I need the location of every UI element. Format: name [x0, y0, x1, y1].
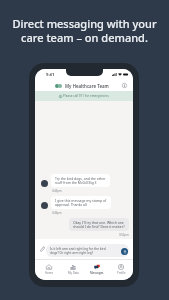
button[interactable]: Profile: [109, 260, 133, 280]
staticText: Please call 911 for emergencies: [63, 94, 109, 98]
staticText: Profile: [117, 271, 126, 275]
staticText: 3:46pm: [52, 211, 62, 215]
button[interactable]: My Data: [61, 260, 85, 280]
staticText: My Data: [68, 271, 79, 275]
button[interactable]: Attach file: [37, 244, 46, 253]
staticText: Is it left arm and right leg for the bir…: [50, 247, 106, 255]
staticText: 3:45pm: [52, 189, 62, 193]
button[interactable]: Is it left arm and right leg for the bir…: [46, 244, 129, 257]
button[interactable]: Home: [37, 260, 61, 280]
staticText: 9:41: [46, 72, 55, 78]
button[interactable]: Send message: [121, 248, 128, 255]
button[interactable]: Messages: [85, 260, 109, 280]
button[interactable]: Conversation info: [121, 82, 128, 89]
staticText: Home: [45, 271, 53, 275]
staticText: My Healthcare Team: [65, 83, 109, 89]
staticText: 3:52pm: [119, 233, 129, 237]
staticText: Try the bird dogs, and the other stuff f…: [55, 176, 106, 185]
staticText: Messages: [90, 271, 104, 275]
staticText: I give this message my stamp of approval…: [55, 198, 107, 207]
staticText: Direct messaging with your care team – o…: [0, 16, 169, 45]
staticText: Okay I'll try that one. Which one should…: [73, 220, 125, 229]
